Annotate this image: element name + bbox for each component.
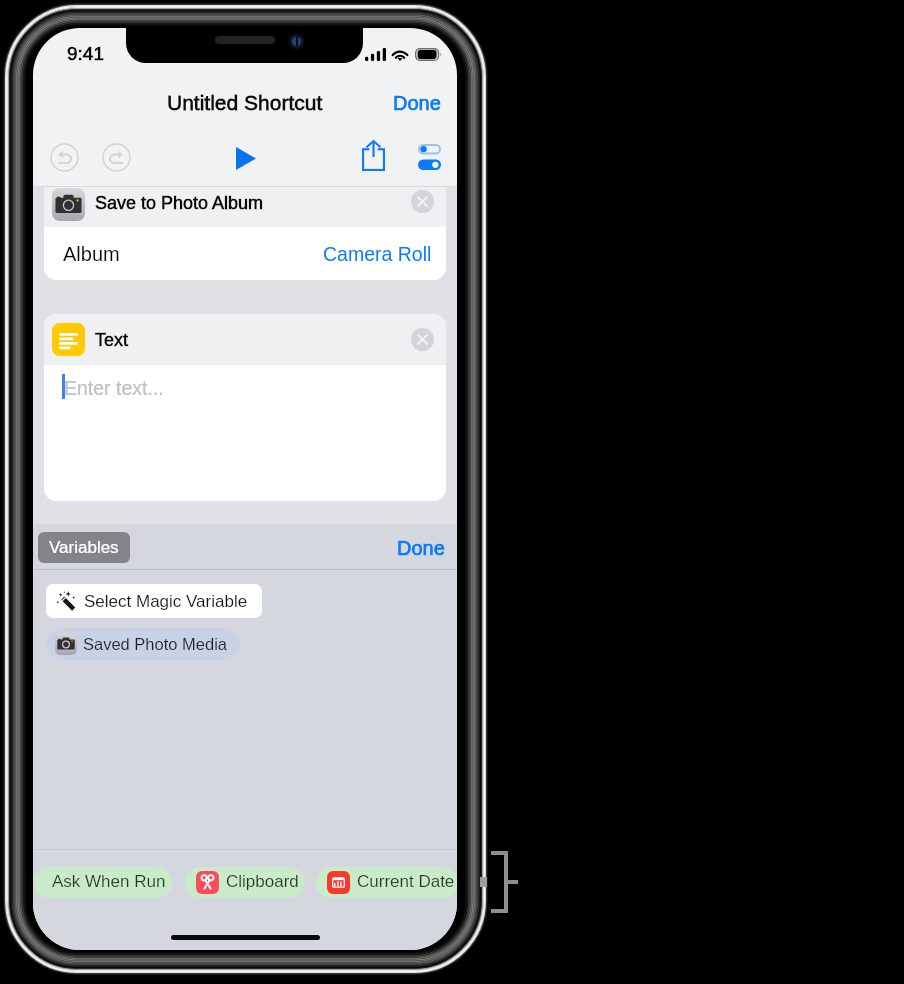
button[interactable]: Remove action <box>411 190 434 213</box>
staticText: Ask When Run <box>52 872 166 891</box>
button[interactable]: Run <box>223 136 267 180</box>
button[interactable]: Select Magic Variable <box>46 584 262 618</box>
button[interactable]: Current Date <box>316 867 457 898</box>
staticText: Text <box>95 330 129 350</box>
staticText: Done <box>397 537 445 559</box>
staticText: 9:41 <box>67 43 104 64</box>
staticText: Album <box>63 243 120 265</box>
staticText: Clipboard <box>226 872 299 891</box>
button[interactable]: Done <box>385 528 457 568</box>
staticText: Save to Photo Album <box>95 193 264 213</box>
staticText: Enter text... <box>64 377 164 399</box>
button[interactable]: Text <box>44 314 446 365</box>
staticText: Untitled Shortcut <box>167 91 323 114</box>
button[interactable]: Saved Photo Media <box>47 628 240 660</box>
button[interactable]: Album <box>44 227 446 280</box>
button[interactable]: Undo <box>46 139 83 176</box>
button[interactable]: Clipboard <box>185 867 304 898</box>
button[interactable]: Remove action <box>411 328 434 351</box>
button[interactable]: Redo <box>98 139 135 176</box>
button[interactable]: Settings <box>409 137 449 177</box>
button[interactable]: Share <box>353 135 393 175</box>
staticText: Saved Photo Media <box>83 635 228 653</box>
button[interactable]: Save to Photo Album <box>44 187 446 227</box>
button[interactable]: Variables <box>38 532 130 563</box>
staticText: Select Magic Variable <box>84 592 248 611</box>
button[interactable]: Done <box>381 84 453 122</box>
staticText: Variables <box>49 538 119 557</box>
staticText: Current Date <box>357 872 455 891</box>
staticText: Camera Roll <box>323 243 432 265</box>
button[interactable]: Ask When Run <box>34 867 172 898</box>
staticText: Done <box>393 92 441 114</box>
